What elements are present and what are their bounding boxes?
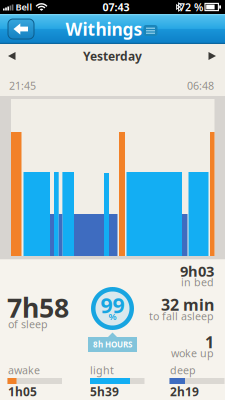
staticText: 1 bbox=[205, 331, 214, 353]
button[interactable]: Back bbox=[8, 19, 34, 39]
staticText: 06:48 bbox=[187, 78, 214, 93]
staticText: 8h HOURS bbox=[93, 339, 132, 350]
staticText: 99 bbox=[100, 291, 124, 319]
button[interactable]: Next day bbox=[200, 48, 224, 64]
button[interactable]: Menu bbox=[143, 25, 157, 36]
staticText: 07:43 bbox=[102, 0, 129, 14]
staticText: 72 % bbox=[179, 0, 203, 14]
staticText: 21:45 bbox=[9, 78, 36, 93]
staticText: of sleep bbox=[8, 317, 48, 331]
staticText: Bell bbox=[15, 1, 32, 13]
staticText: % bbox=[108, 310, 116, 323]
staticText: Yesterday bbox=[83, 48, 142, 64]
staticText: Withings bbox=[65, 17, 142, 40]
staticText: 5h39 bbox=[90, 383, 119, 399]
staticText: 1h05 bbox=[8, 383, 37, 399]
staticText: 2h19 bbox=[170, 383, 199, 399]
staticText: in bed bbox=[181, 275, 214, 289]
staticText: 9h03 bbox=[180, 261, 214, 281]
staticText: deep bbox=[170, 363, 196, 377]
staticText: awake bbox=[8, 363, 40, 377]
staticText: woke up bbox=[171, 346, 214, 360]
staticText: light bbox=[90, 363, 114, 377]
button[interactable]: Previous day bbox=[0, 48, 24, 64]
staticText: to fall asleep bbox=[149, 309, 214, 323]
staticText: 32 min bbox=[161, 294, 214, 315]
staticText: 7h58 bbox=[7, 290, 69, 325]
